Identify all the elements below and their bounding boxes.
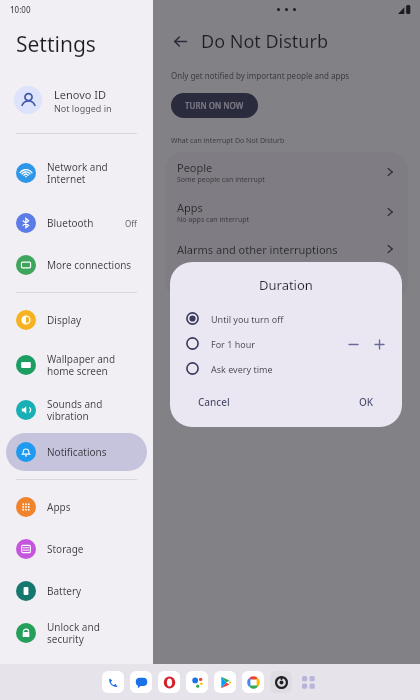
button[interactable]: Increase [370,335,388,353]
staticText: Only get notified by important people an… [171,70,350,81]
button[interactable]: Settings [270,671,292,693]
staticText: Network and Internet [47,160,137,186]
button[interactable]: Partially hidden [165,266,408,300]
staticText: Bluetooth [47,216,125,230]
staticText: Until you turn off [211,313,388,325]
staticText: For 1 hour [211,338,344,350]
staticText: Apps [177,200,203,215]
staticText: Apps [47,500,137,514]
button[interactable]: Ask every time [170,356,402,381]
staticText: Lenovo ID [54,87,107,102]
button[interactable]: Assistant [186,671,208,693]
staticText: 10:00 [10,4,31,15]
button[interactable]: Play Store [214,671,236,693]
button[interactable]: All apps [295,669,321,695]
staticText: Ask every time [211,363,388,375]
button[interactable]: Back [167,28,193,54]
staticText: Do Not Disturb [201,29,328,54]
button[interactable]: Apps [6,488,147,526]
staticText: OK [359,395,374,409]
button[interactable]: Phone [102,671,124,693]
button[interactable]: Network and Internet [6,146,147,200]
button[interactable]: Storage [6,530,147,568]
staticText: Duration [259,276,313,294]
staticText: Display [47,313,137,327]
button[interactable]: Photos [242,671,264,693]
staticText: Notifications [47,445,137,459]
button[interactable]: Decrease [344,335,362,353]
staticText: People [177,160,213,175]
button[interactable]: People [165,152,408,192]
button[interactable]: Opera [158,671,180,693]
button[interactable]: Apps [165,192,408,232]
staticText: Cancel [198,395,230,409]
staticText: Not logged in [54,102,112,114]
button[interactable]: Unlock and security [6,614,147,652]
staticText: What can interrupt Do Not Disturb [171,136,285,146]
button[interactable]: More connections [6,246,147,284]
staticText: Storage [47,542,137,556]
staticText: Unlock and security [47,620,137,646]
button[interactable]: Cancel [188,391,240,413]
staticText: Off [125,218,137,229]
button[interactable]: Until you turn off [170,306,402,331]
staticText: Battery [47,584,137,598]
staticText: Alarms and other interruptions [177,242,338,257]
staticText: Settings [16,30,96,59]
staticText: Wallpaper and home screen [47,352,137,378]
button[interactable]: OK [349,391,384,413]
staticText: Sounds and vibration [47,397,137,423]
staticText: TURN ON NOW [185,100,244,111]
button[interactable]: TURN ON NOW [171,93,258,118]
button[interactable]: Messages [130,671,152,693]
button[interactable]: Sounds and vibration [6,391,147,429]
button[interactable]: For 1 hour [170,331,402,356]
staticText: More connections [47,258,137,272]
button[interactable]: Bluetooth [6,204,147,242]
staticText: No apps can interrupt [177,215,250,225]
button[interactable]: Lenovo ID [0,77,153,123]
button[interactable]: Battery [6,572,147,610]
button[interactable]: Notifications [6,433,147,471]
button[interactable]: Display [6,301,147,339]
button[interactable]: Wallpaper and home screen [6,343,147,387]
staticText: Some people can interrupt [177,175,265,185]
button[interactable]: Alarms and other interruptions [165,232,408,266]
